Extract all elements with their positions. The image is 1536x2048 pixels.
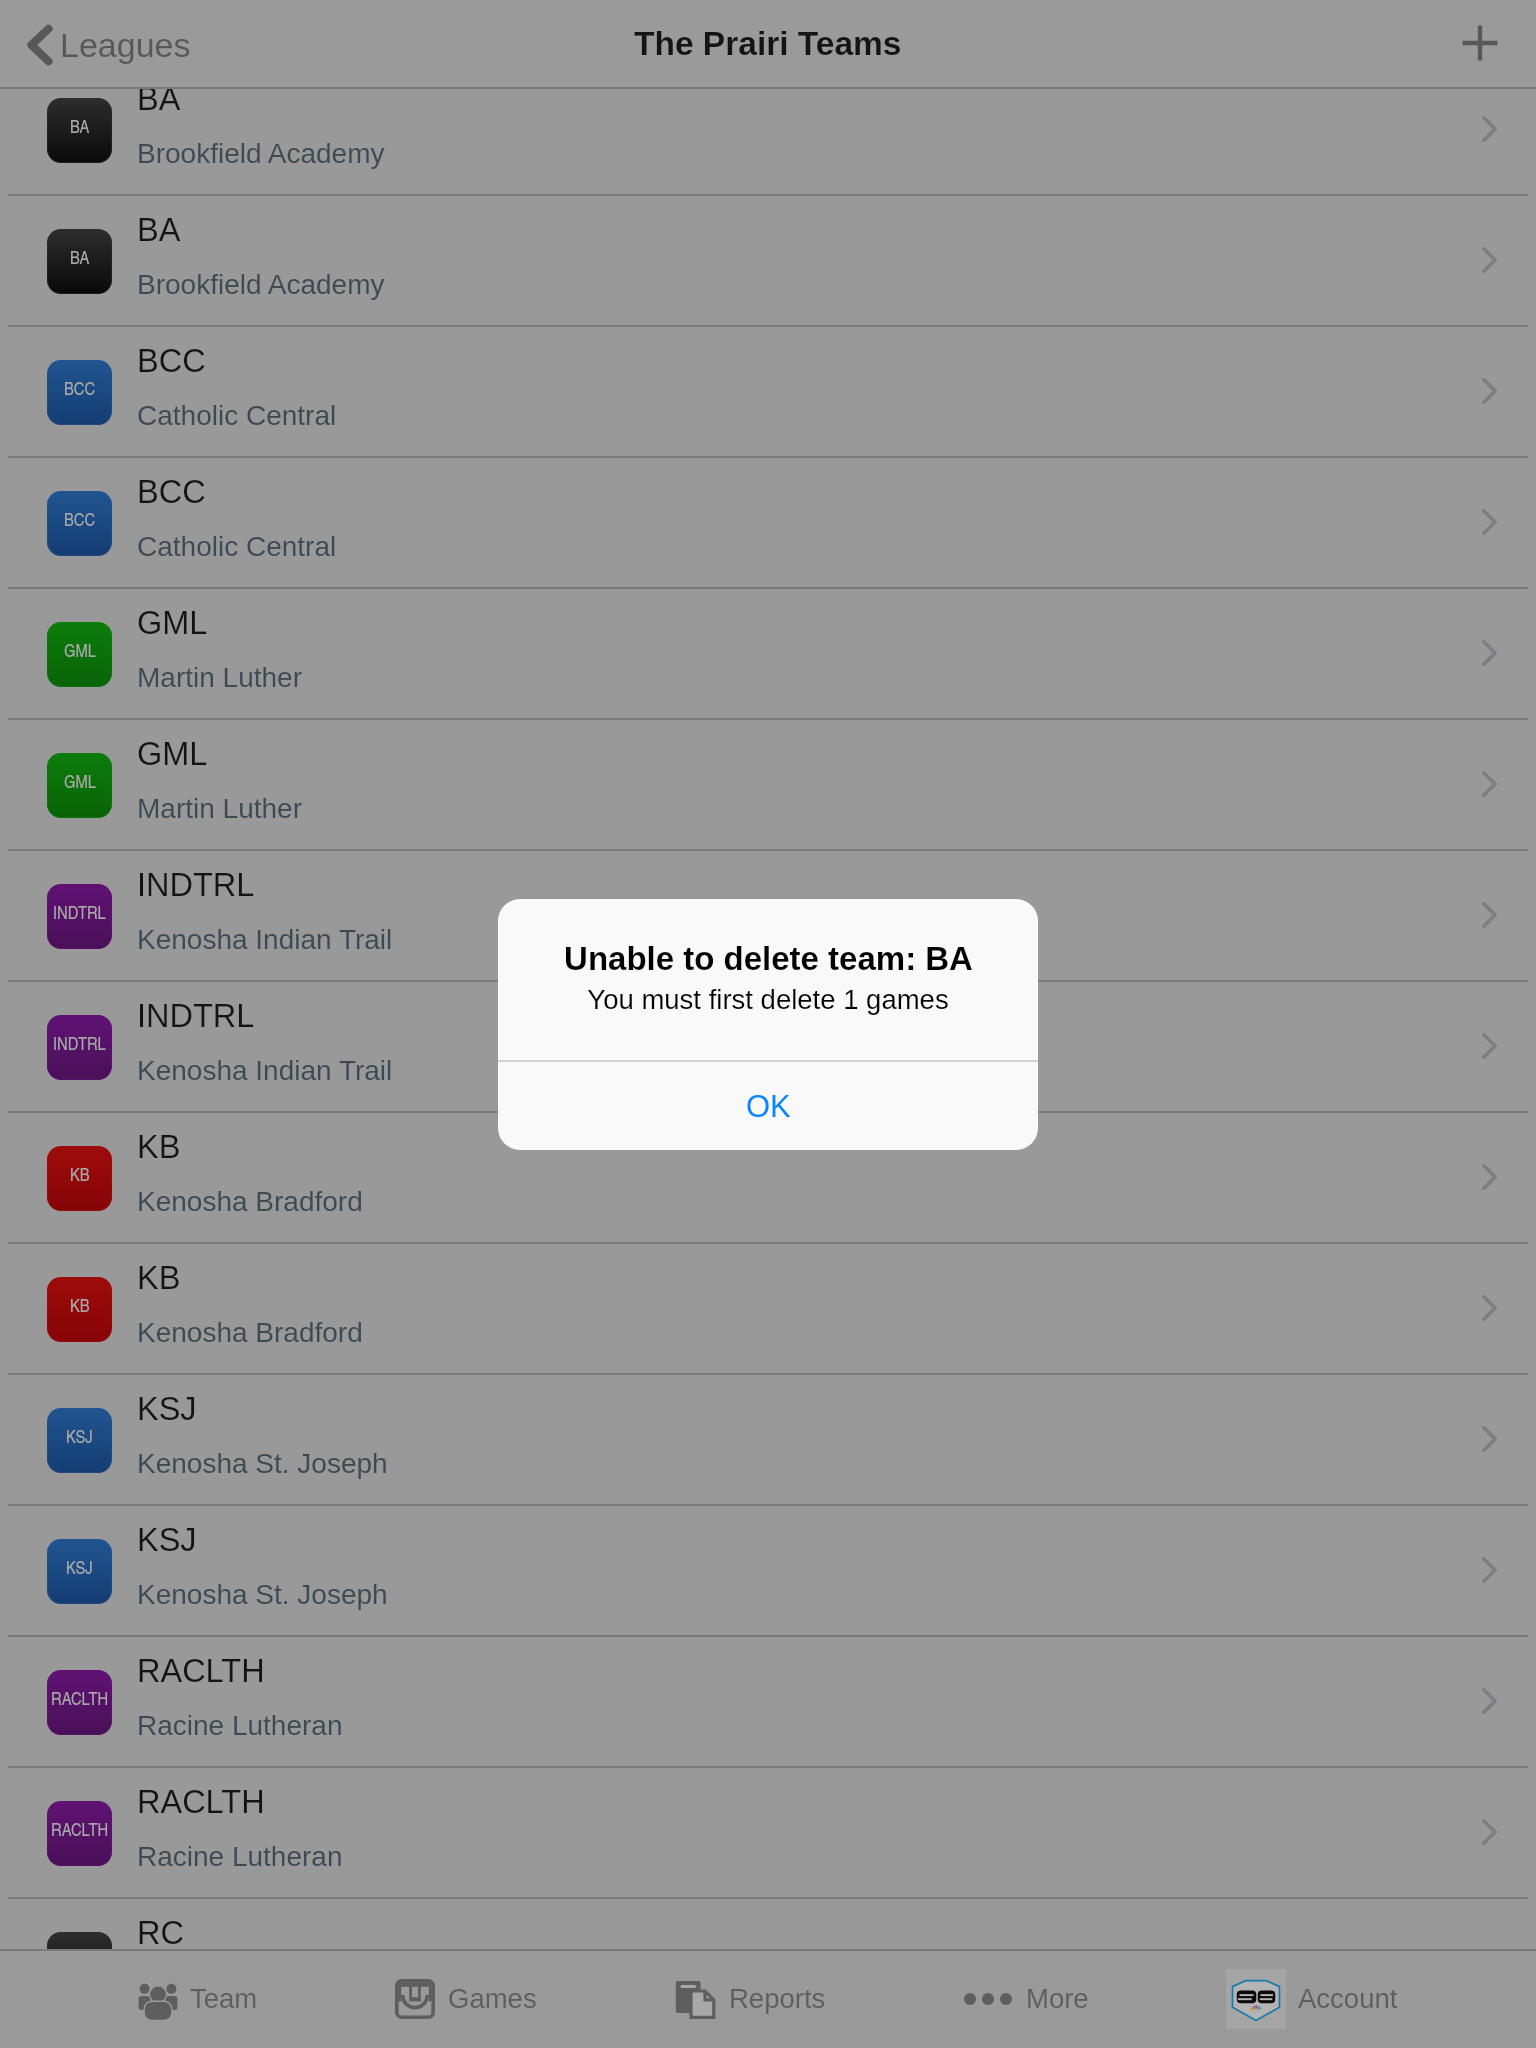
staticText: Racine Lutheran [137, 1710, 343, 1741]
staticText: KSJ [66, 1554, 93, 1579]
button[interactable]: Back to Leagues [0, 0, 201, 89]
button[interactable]: INDTRL [0, 851, 1536, 982]
button[interactable]: More [964, 1949, 1089, 2048]
staticText: KB [70, 1292, 90, 1317]
button[interactable]: INDTRL [0, 982, 1536, 1113]
staticText: KB [137, 1260, 181, 1296]
staticText: KSJ [137, 1522, 197, 1558]
button[interactable]: KB [0, 1113, 1536, 1244]
staticText: BCC [64, 506, 96, 531]
staticText: Kenosha Bradford [137, 1317, 363, 1348]
staticText: The Prairi Teams [634, 25, 902, 62]
staticText: BA [70, 244, 90, 269]
staticText: Brookfield Academy [137, 269, 385, 300]
staticText: RACLTH [51, 1685, 109, 1710]
button[interactable]: Reports [675, 1949, 826, 2048]
staticText: Kenosha Indian Trail [137, 1055, 393, 1086]
staticText: Leagues [60, 26, 191, 64]
staticText: Team [190, 1983, 258, 2014]
button[interactable]: GML [0, 589, 1536, 720]
button[interactable]: RC [0, 1899, 1536, 1949]
staticText: More [1026, 1983, 1089, 2014]
staticText: BA [137, 89, 181, 117]
staticText: Reports [729, 1983, 826, 2014]
button[interactable]: Team [138, 1949, 258, 2048]
staticText: BA [70, 113, 90, 138]
staticText: Account [1298, 1983, 1398, 2014]
staticText: Catholic Central [137, 400, 337, 431]
staticText: RACLTH [137, 1653, 265, 1689]
staticText: Kenosha Bradford [137, 1186, 363, 1217]
staticText: INDTRL [53, 899, 106, 924]
staticText: You must first delete 1 games [587, 984, 949, 1015]
staticText: KB [70, 1161, 90, 1186]
button[interactable]: RACLTH [0, 1768, 1536, 1899]
staticText: Brookfield Academy [137, 138, 385, 169]
staticText: OK [746, 1089, 791, 1124]
staticText: GML [137, 736, 208, 772]
button[interactable]: KSJ [0, 1506, 1536, 1637]
staticText: BA [137, 212, 181, 248]
staticText: BCC [137, 474, 206, 510]
staticText: BCC [137, 343, 206, 379]
button[interactable]: BA [0, 89, 1536, 196]
staticText: RACLTH [137, 1784, 265, 1820]
staticText: Games [448, 1983, 537, 2014]
staticText: Kenosha St. Joseph [137, 1448, 388, 1479]
button[interactable]: GML [0, 720, 1536, 851]
button[interactable]: KB [0, 1244, 1536, 1375]
staticText: Unable to delete team: BA [564, 940, 973, 977]
staticText: KSJ [137, 1391, 197, 1427]
staticText: Kenosha St. Joseph [137, 1579, 388, 1610]
button[interactable]: Games [395, 1949, 537, 2048]
button[interactable]: KSJ [0, 1375, 1536, 1506]
staticText: INDTRL [137, 998, 255, 1034]
staticText: INDTRL [137, 867, 255, 903]
staticText: RC [137, 1915, 184, 1949]
staticText: GML [64, 637, 96, 662]
button[interactable]: BA [0, 196, 1536, 327]
button[interactable]: BCC [0, 327, 1536, 458]
staticText: GML [64, 768, 96, 793]
staticText: KSJ [66, 1423, 93, 1448]
staticText: RACLTH [51, 1816, 109, 1841]
staticText: INDTRL [53, 1030, 106, 1055]
staticText: Martin Luther [137, 662, 302, 693]
staticText: Kenosha Indian Trail [137, 924, 393, 955]
button[interactable]: OK [498, 1062, 1038, 1150]
staticText: Martin Luther [137, 793, 302, 824]
staticText: GML [137, 605, 208, 641]
staticText: Catholic Central [137, 531, 337, 562]
button[interactable]: Add team [1440, 0, 1536, 89]
staticText: BCC [64, 375, 96, 400]
button[interactable]: Account [1226, 1949, 1398, 2048]
button[interactable]: BCC [0, 458, 1536, 589]
staticText: KB [137, 1129, 181, 1165]
staticText: Racine Lutheran [137, 1841, 343, 1872]
button[interactable]: RACLTH [0, 1637, 1536, 1768]
